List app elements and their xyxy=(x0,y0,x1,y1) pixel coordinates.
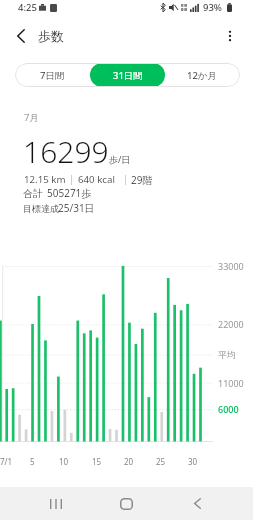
staticText: 22000 xyxy=(218,318,244,330)
staticText: 目標達成 xyxy=(23,203,59,214)
staticText: 33000 xyxy=(218,260,244,272)
staticText: 15 xyxy=(92,456,102,467)
staticText: 640 kcal xyxy=(78,173,115,186)
staticText: 5 xyxy=(30,456,35,467)
staticText: 25 xyxy=(156,456,166,467)
staticText: 7/1 xyxy=(0,456,13,467)
staticText: 12か月 xyxy=(187,69,218,82)
staticText: 7日間 xyxy=(40,69,65,82)
staticText: 7月 xyxy=(24,111,39,124)
staticText: 合計 xyxy=(23,187,43,200)
staticText: 4:25 xyxy=(18,1,37,14)
staticText: 30 xyxy=(188,456,198,467)
button[interactable]: 12か月 xyxy=(165,63,240,87)
staticText: 29階 xyxy=(131,173,153,187)
button[interactable]: Back xyxy=(9,24,33,48)
staticText: 20 xyxy=(124,456,134,467)
staticText: 11000 xyxy=(218,377,244,389)
staticText: 93% xyxy=(203,1,222,14)
staticText: 10 xyxy=(59,456,69,467)
staticText: 25/31日 xyxy=(58,201,95,215)
button[interactable]: 31日間 xyxy=(90,63,165,87)
button[interactable]: 7日間 xyxy=(15,63,90,87)
staticText: 505271歩 xyxy=(47,186,92,200)
button[interactable]: Recent apps xyxy=(40,489,71,518)
button[interactable]: Back xyxy=(182,489,213,518)
staticText: 16299 xyxy=(23,131,109,172)
button[interactable]: More options xyxy=(218,24,242,48)
staticText: 6000 xyxy=(218,403,239,415)
staticText: 12.15 km xyxy=(24,173,66,186)
staticText: 歩数 xyxy=(38,28,64,44)
staticText: 平均 xyxy=(218,349,236,360)
staticText: 31日間 xyxy=(113,69,143,82)
button[interactable]: Home xyxy=(111,489,142,518)
staticText: 歩/日 xyxy=(109,153,131,165)
